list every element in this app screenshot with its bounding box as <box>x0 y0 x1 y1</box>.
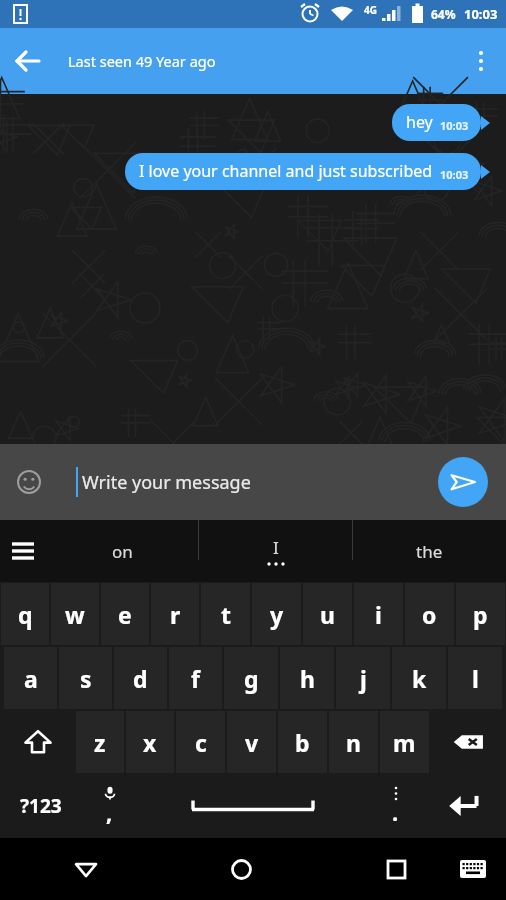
button[interactable]: d <box>114 647 167 709</box>
staticText: i <box>375 599 382 630</box>
button[interactable]: Write your message <box>82 470 251 495</box>
staticText: p <box>473 599 488 630</box>
staticText: 10:03 <box>440 118 469 133</box>
staticText: j <box>360 663 367 694</box>
staticText: , <box>106 797 113 827</box>
button[interactable]: o <box>405 583 454 645</box>
button[interactable]: a <box>4 647 57 709</box>
button[interactable]: Shift <box>1 711 74 773</box>
button[interactable]: hey <box>392 104 490 141</box>
staticText: on <box>112 540 133 563</box>
button[interactable]: q <box>1 583 49 645</box>
button[interactable]: n <box>329 711 378 773</box>
button[interactable]: h <box>280 647 334 709</box>
button[interactable]: g <box>224 647 278 709</box>
button[interactable]: Back <box>0 33 56 89</box>
staticText: w <box>65 599 85 630</box>
staticText: g <box>244 663 259 694</box>
button[interactable]: Enter <box>424 775 505 837</box>
button[interactable]: i <box>354 583 403 645</box>
staticText: I <box>273 536 279 559</box>
button[interactable]: Recents <box>370 843 422 895</box>
staticText: l <box>472 663 479 694</box>
staticText: d <box>133 663 148 694</box>
button[interactable]: I <box>199 520 352 582</box>
staticText: c <box>195 727 207 758</box>
staticText: I love your channel and just subscribed <box>139 160 433 182</box>
button[interactable]: v <box>227 711 276 773</box>
staticText: k <box>412 663 427 694</box>
staticText: u <box>320 599 335 630</box>
staticText: h <box>300 663 315 694</box>
button[interactable]: ?123 <box>1 775 81 837</box>
staticText: . <box>392 797 399 827</box>
button[interactable]: Comma and voice input <box>83 775 136 837</box>
button[interactable]: Back <box>60 843 112 895</box>
staticText: Last seen 49 Year ago <box>68 51 216 71</box>
button[interactable]: on <box>46 520 198 582</box>
button[interactable]: s <box>59 647 112 709</box>
button[interactable]: Send <box>438 457 488 507</box>
staticText: m <box>393 727 416 758</box>
staticText: ?123 <box>20 793 62 819</box>
staticText: q <box>18 599 33 630</box>
staticText: 10:03 <box>440 167 469 182</box>
staticText: z <box>94 727 106 758</box>
button[interactable]: Switch keyboard <box>450 846 496 892</box>
button[interactable]: m <box>380 711 429 773</box>
button[interactable]: j <box>336 647 390 709</box>
button[interactable]: Home <box>215 843 267 895</box>
staticText: v <box>245 727 259 758</box>
button[interactable]: Period and settings <box>369 775 422 837</box>
button[interactable]: p <box>456 583 505 645</box>
staticText: hey <box>406 111 433 133</box>
staticText: the <box>416 540 443 563</box>
button[interactable]: Space <box>138 775 367 837</box>
button[interactable]: More options <box>456 36 506 86</box>
staticText: f <box>191 663 200 694</box>
button[interactable]: x <box>126 711 174 773</box>
staticText: e <box>118 599 132 630</box>
staticText: o <box>422 599 437 630</box>
button[interactable]: u <box>303 583 352 645</box>
button[interactable]: t <box>201 583 250 645</box>
staticText: y <box>270 599 284 630</box>
button[interactable]: Backspace <box>431 711 505 773</box>
staticText: r <box>170 599 181 630</box>
staticText: 10:03 <box>464 5 498 23</box>
staticText: t <box>221 599 231 630</box>
button[interactable]: e <box>101 583 149 645</box>
staticText: 64% <box>431 6 456 22</box>
button[interactable]: I love your channel and just subscribed <box>125 153 490 190</box>
staticText: n <box>346 727 361 758</box>
button[interactable]: w <box>51 583 99 645</box>
button[interactable]: y <box>252 583 301 645</box>
button[interactable]: r <box>151 583 199 645</box>
button[interactable]: f <box>169 647 222 709</box>
button[interactable]: l <box>448 647 502 709</box>
button[interactable]: the <box>353 520 506 582</box>
staticText: 4G <box>364 3 377 17</box>
button[interactable]: b <box>278 711 327 773</box>
button[interactable]: z <box>76 711 124 773</box>
button[interactable]: Keyboard menu <box>0 528 46 574</box>
staticText: a <box>24 663 38 694</box>
button[interactable]: c <box>176 711 225 773</box>
staticText: x <box>143 727 157 758</box>
button[interactable]: Emoji <box>6 459 52 505</box>
button[interactable]: k <box>392 647 446 709</box>
staticText: b <box>295 727 310 758</box>
staticText: s <box>80 663 92 694</box>
